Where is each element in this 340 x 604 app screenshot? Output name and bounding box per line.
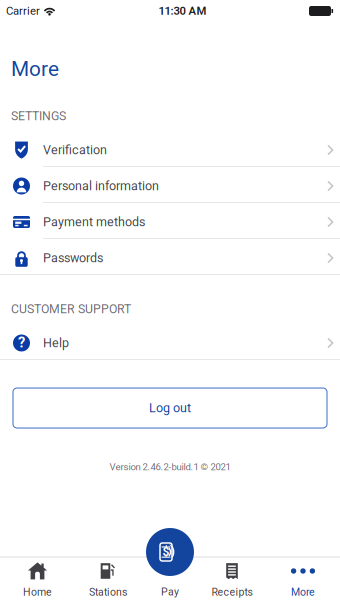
staticText: Personal information [43, 179, 159, 193]
button[interactable]: Log out [13, 388, 327, 428]
staticText: Help [43, 336, 69, 350]
staticText: Home [23, 586, 52, 598]
button[interactable]: Pay [146, 528, 194, 576]
button[interactable]: Payment methods [0, 203, 340, 239]
button[interactable]: Personal information [0, 167, 340, 203]
button[interactable]: Home [6, 557, 68, 604]
staticText: CUSTOMER SUPPORT [11, 302, 131, 316]
staticText: Stations [89, 586, 127, 598]
staticText: Log out [149, 401, 191, 415]
staticText: Pay [161, 586, 179, 598]
staticText: ? [18, 334, 25, 351]
staticText: Verification [43, 143, 107, 157]
staticText: Version 2.46.2-build.1 © 2021 [109, 461, 230, 473]
staticText: More [291, 586, 315, 598]
staticText: SETTINGS [11, 109, 66, 123]
staticText: 11:30 AM [158, 4, 206, 18]
staticText: $ [162, 545, 169, 559]
button[interactable]: Stations [77, 557, 139, 604]
staticText: Payment methods [43, 215, 145, 229]
staticText: Passwords [43, 251, 103, 265]
button[interactable]: More [272, 557, 334, 604]
staticText: Carrier [6, 4, 40, 18]
button[interactable]: ? [0, 324, 340, 360]
button[interactable]: Verification [0, 131, 340, 167]
staticText: More [11, 57, 59, 81]
button[interactable]: Pay [139, 584, 201, 600]
button[interactable]: Receipts [201, 557, 263, 604]
button[interactable]: Passwords [0, 239, 340, 275]
staticText: Receipts [211, 586, 252, 598]
